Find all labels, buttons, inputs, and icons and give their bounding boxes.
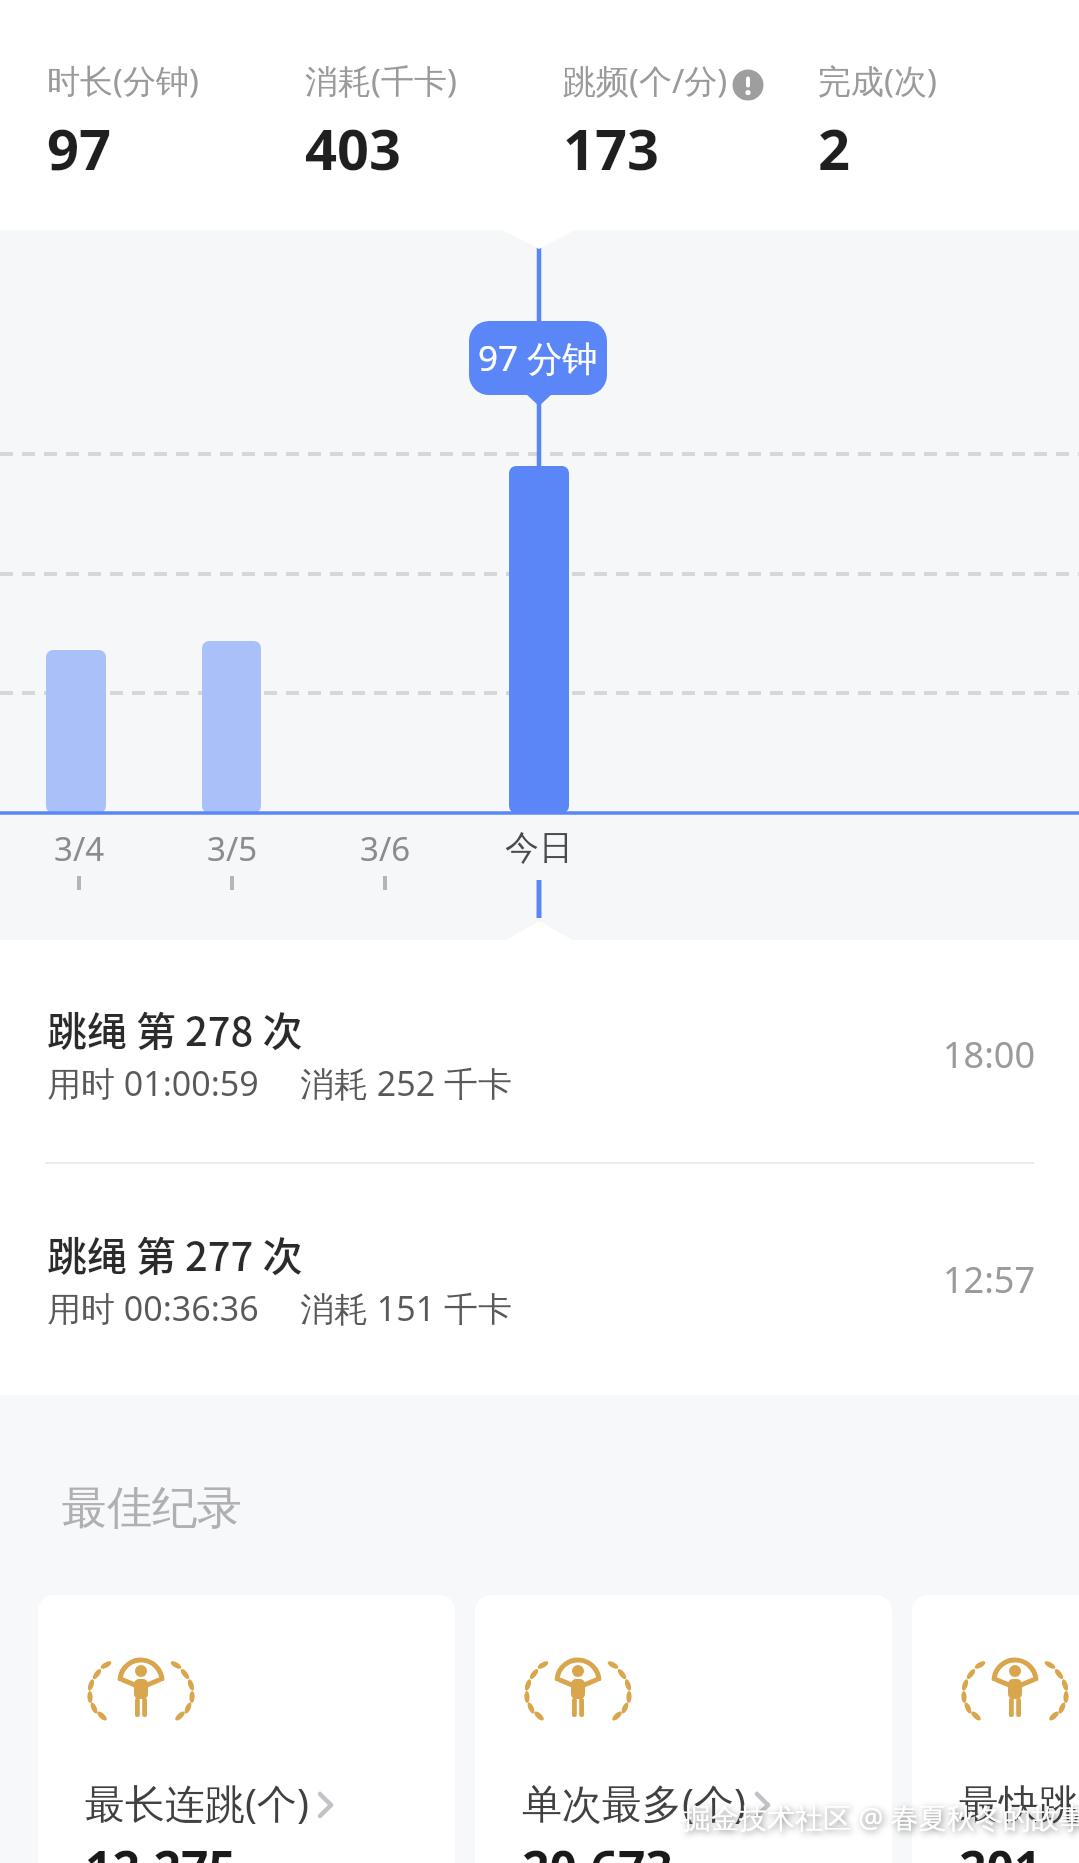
staticText: 18:00 [943,1030,1036,1079]
staticText: 3/6 [360,826,411,871]
button[interactable]: 最快跳绳(个/分) [912,1595,1079,1863]
staticText: 消耗 151 千卡 [300,1285,513,1331]
staticText: 掘金技术社区 @ 春夏秋冬的故事 [683,1798,1079,1836]
button[interactable] [732,69,764,101]
staticText: 完成(次) [818,58,937,103]
staticText: 最长连跳(个) [85,1775,309,1830]
staticText: 97 [47,110,112,186]
staticText: 2 [818,110,851,186]
staticText: 3/5 [207,826,258,871]
staticText: 403 [305,110,402,186]
button[interactable]: 跳绳 第 278 次 [0,975,1079,1160]
staticText: 跳绳 第 278 次 [47,1000,303,1058]
staticText: 用时 00:36:36 [47,1285,259,1331]
button[interactable]: 单次最多(个) [475,1595,892,1863]
staticText: 消耗 252 千卡 [300,1060,513,1106]
staticText: 跳绳 第 277 次 [47,1225,303,1283]
staticText: 跳频(个/分) [563,58,728,103]
staticText: 12,275 [85,1835,236,1863]
button[interactable]: 最长连跳(个) [38,1595,455,1863]
staticText: 消耗(千卡) [305,58,457,103]
staticText: 20,673 [522,1835,673,1863]
staticText: 单次最多(个) [522,1775,746,1830]
staticText: 201 [959,1835,1042,1863]
staticText: 97 分钟 [478,334,598,382]
staticText: 173 [563,110,660,186]
button[interactable]: 跳绳 第 277 次 [0,1200,1079,1385]
staticText: 今日 [505,826,573,869]
staticText: 用时 01:00:59 [47,1060,259,1106]
staticText: 最佳纪录 [62,1480,242,1537]
staticText: 时长(分钟) [47,58,199,103]
staticText: 12:57 [943,1255,1036,1304]
staticText: 3/4 [54,826,105,871]
staticText: 最快跳绳(个/分) [959,1775,1079,1830]
